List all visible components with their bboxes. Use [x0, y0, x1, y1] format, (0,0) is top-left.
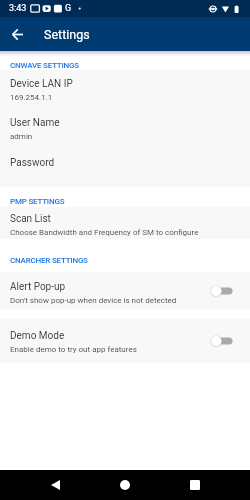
staticText: Choose Bandwidth and Frequency of SM to … — [10, 228, 199, 237]
staticText: 169.254.1.1 — [10, 93, 53, 102]
button[interactable]: Device LAN IP — [0, 70, 250, 109]
staticText: CNWAVE SETTINGS — [10, 61, 79, 70]
staticText: Alert Pop-up — [10, 281, 66, 293]
button[interactable]: Home — [112, 473, 137, 496]
button[interactable]: Back — [6, 23, 29, 46]
button[interactable]: User Name — [0, 109, 250, 149]
staticText: Password — [10, 157, 55, 169]
staticText: Scan List — [10, 213, 51, 225]
button[interactable]: Demo Mode — [0, 319, 250, 363]
staticText: 3:43 — [9, 3, 27, 14]
staticText: G — [65, 3, 72, 14]
staticText: Device LAN IP — [10, 78, 73, 90]
staticText: admin — [10, 132, 33, 141]
button[interactable]: Scan List — [0, 207, 250, 239]
staticText: CNARCHER SETTINGS — [10, 256, 88, 265]
button[interactable]: Back — [43, 474, 68, 496]
staticText: PMP SETTINGS — [10, 197, 65, 206]
staticText: Settings — [44, 27, 90, 42]
staticText: Enable demo to try out app features — [10, 345, 137, 354]
staticText: Don't show pop-up when device is not det… — [10, 296, 177, 305]
button[interactable]: Alert Pop-up — [0, 272, 250, 309]
staticText: User Name — [10, 117, 60, 129]
button[interactable]: Password — [0, 149, 250, 187]
staticText: Demo Mode — [10, 330, 65, 342]
button[interactable]: Recent apps — [182, 474, 207, 496]
